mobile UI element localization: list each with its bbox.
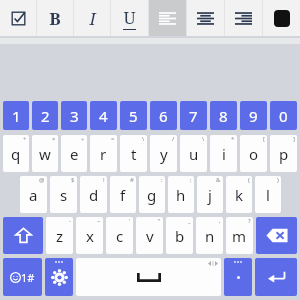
staticText: 5 — [129, 106, 138, 126]
button[interactable]: t — [120, 135, 147, 172]
staticText: B — [49, 7, 61, 30]
button[interactable]: 8 — [210, 101, 237, 130]
button[interactable]: x — [76, 217, 103, 254]
button[interactable]: q — [3, 135, 29, 172]
button[interactable]: u — [180, 135, 207, 172]
button[interactable]: n — [196, 217, 223, 254]
staticText: l — [266, 185, 270, 205]
staticText: ] — [293, 135, 295, 143]
button[interactable]: w — [32, 135, 58, 172]
staticText: d — [89, 185, 99, 205]
button[interactable]: c — [106, 217, 133, 254]
staticText: b — [175, 226, 185, 246]
button[interactable]: a — [20, 176, 47, 213]
staticText: : — [161, 176, 163, 184]
button[interactable]: Enter — [255, 258, 297, 296]
button[interactable]: Shift — [3, 217, 43, 254]
button[interactable]: Backspace — [256, 217, 297, 254]
staticText: , — [219, 217, 221, 225]
button[interactable]: m — [226, 217, 253, 254]
button[interactable]: b — [166, 217, 193, 254]
button[interactable]: Settings — [45, 258, 73, 296]
button[interactable]: 6 — [150, 101, 177, 130]
button[interactable]: d — [80, 176, 107, 213]
staticText: m — [232, 226, 247, 246]
button[interactable]: Align 0 — [149, 0, 186, 36]
staticText: z — [56, 226, 64, 246]
button[interactable]: s — [50, 176, 77, 213]
button[interactable]: Align 2 — [225, 0, 262, 36]
button[interactable]: g — [139, 176, 165, 213]
button[interactable]: 1 — [3, 101, 29, 130]
button[interactable]: 3 — [61, 101, 87, 130]
staticText: r — [100, 144, 107, 164]
button[interactable]: f — [110, 176, 136, 213]
button[interactable]: i — [210, 135, 237, 172]
staticText: q — [11, 144, 21, 164]
staticText: w — [39, 144, 51, 164]
button[interactable]: I — [74, 0, 110, 36]
button[interactable]: o — [240, 135, 267, 172]
button[interactable]: l — [255, 176, 281, 213]
staticText: s — [60, 185, 68, 205]
staticText: u — [189, 144, 199, 164]
staticText: × — [52, 135, 56, 143]
staticText: ! — [103, 176, 105, 184]
staticText: U — [123, 6, 136, 29]
staticText: ' — [129, 217, 131, 225]
button[interactable]: v — [136, 217, 163, 254]
button[interactable]: Color — [263, 0, 300, 36]
staticText: + — [23, 135, 27, 143]
staticText: i — [222, 144, 226, 164]
staticText: f — [120, 185, 126, 205]
staticText: _ — [188, 217, 191, 225]
staticText: @ — [39, 176, 45, 184]
button[interactable]: h — [168, 176, 194, 213]
button[interactable]: 4 — [90, 101, 117, 130]
staticText: 8 — [219, 106, 228, 126]
button[interactable]: 9 — [240, 101, 267, 130]
button[interactable]: 2 — [32, 101, 58, 130]
button[interactable]: U — [111, 0, 148, 36]
button[interactable]: 0 — [270, 101, 297, 130]
staticText: 4 — [99, 106, 108, 126]
staticText: e — [70, 144, 79, 164]
staticText: x — [86, 226, 94, 246]
button[interactable]: y — [150, 135, 177, 172]
button[interactable]: Checkbox — [0, 0, 36, 36]
button[interactable]: 5 — [120, 101, 147, 130]
staticText: o — [249, 144, 259, 164]
button[interactable]: j — [197, 176, 223, 213]
staticText: / — [172, 135, 175, 143]
staticText: 0 — [279, 106, 288, 126]
staticText: ; — [190, 176, 192, 184]
button[interactable]: B — [37, 0, 73, 36]
button[interactable]: Symbols — [3, 258, 42, 296]
staticText: 1# — [21, 270, 35, 285]
staticText: I — [89, 7, 96, 30]
staticText: j — [208, 185, 212, 205]
staticText: 9 — [249, 106, 258, 126]
button[interactable]: z — [46, 217, 73, 254]
staticText: v — [146, 226, 154, 246]
staticText: k — [235, 185, 244, 205]
staticText: = — [111, 135, 115, 143]
button[interactable]: 7 — [180, 101, 207, 130]
staticText: 6 — [159, 106, 168, 126]
staticText: 2 — [41, 106, 50, 126]
staticText: [ — [263, 135, 265, 143]
button[interactable]: k — [226, 176, 252, 213]
button[interactable]: e — [61, 135, 87, 172]
staticText: " — [158, 217, 161, 225]
staticText: 1 — [12, 106, 21, 126]
staticText: $ — [71, 176, 75, 184]
staticText: t — [131, 144, 137, 164]
button[interactable]: Period — [224, 258, 252, 296]
button[interactable]: Align 1 — [187, 0, 224, 36]
staticText: h — [176, 185, 186, 205]
staticText: g — [147, 185, 157, 205]
button[interactable]: r — [90, 135, 117, 172]
button[interactable]: Space — [76, 258, 221, 296]
staticText: y — [160, 144, 168, 164]
button[interactable]: p — [270, 135, 297, 172]
